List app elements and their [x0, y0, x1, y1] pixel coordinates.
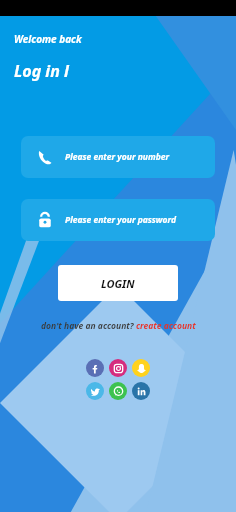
other: Phone — [37, 149, 53, 165]
staticText: Please enter your number — [65, 151, 170, 163]
button[interactable]: WhatsApp — [109, 382, 127, 400]
button[interactable]: LinkedIn — [132, 382, 150, 400]
button[interactable]: Snapchat — [132, 359, 150, 377]
other: Password — [37, 212, 53, 228]
button[interactable]: Password — [21, 199, 215, 241]
staticText: Log in l — [14, 60, 69, 82]
staticText: LOGIN — [101, 276, 135, 291]
button[interactable]: Phone — [21, 136, 215, 178]
staticText: don't have an account? — [41, 320, 136, 332]
button[interactable]: Facebook — [86, 359, 104, 377]
staticText: Please enter your password — [65, 214, 176, 226]
staticText: Welcome back — [14, 32, 82, 46]
button[interactable]: don't have an account? — [35, 317, 202, 335]
button[interactable]: Twitter — [86, 382, 104, 400]
staticText: create account — [136, 320, 196, 332]
button[interactable]: Instagram — [109, 359, 127, 377]
button[interactable]: LOGIN — [58, 265, 178, 301]
